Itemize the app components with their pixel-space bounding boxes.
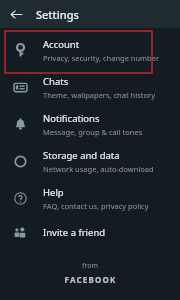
staticText: Theme, wallpapers, chat history <box>43 90 155 100</box>
staticText: Chats <box>43 75 69 88</box>
button[interactable]: Account <box>0 32 180 69</box>
button[interactable]: Invite a friend <box>0 217 180 247</box>
button[interactable]: Storage and data <box>0 143 180 180</box>
staticText: Account <box>43 38 80 51</box>
staticText: Privacy, security, change number <box>43 53 160 63</box>
staticText: Storage and data <box>43 149 120 162</box>
staticText: Notifications <box>43 112 100 125</box>
button[interactable]: Notifications <box>0 106 180 143</box>
staticText: Help <box>43 186 64 199</box>
button[interactable]: Help <box>0 180 180 217</box>
button[interactable]: Back <box>4 2 28 26</box>
staticText: from <box>82 261 98 271</box>
staticText: Network usage, auto-download <box>43 164 154 174</box>
staticText: Message, group & call tones <box>43 127 143 137</box>
staticText: Settings <box>36 7 79 22</box>
staticText: Invite a friend <box>43 226 106 239</box>
staticText: FAQ, contact us, privacy policy <box>43 201 149 211</box>
staticText: FACEBOOK <box>64 274 117 285</box>
button[interactable]: Chats <box>0 69 180 106</box>
